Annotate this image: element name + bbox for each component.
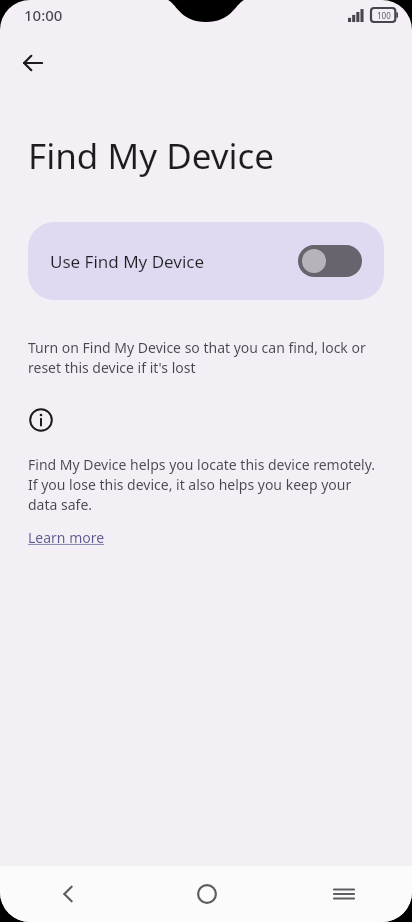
staticText: Find My Device helps you locate this dev…	[28, 455, 384, 514]
button[interactable]: Learn more	[28, 528, 105, 547]
button[interactable]: Use Find My Device	[28, 222, 384, 300]
staticText: 10:00	[24, 5, 63, 25]
staticText: Learn more	[28, 528, 105, 547]
button[interactable]: Home	[138, 866, 275, 922]
staticText: Turn on Find My Device so that you can f…	[28, 338, 384, 377]
staticText: 100	[377, 10, 391, 21]
button[interactable]: Back	[12, 42, 54, 84]
staticText: Use Find My Device	[50, 250, 205, 273]
button[interactable]: Back	[0, 866, 138, 922]
button[interactable]: Recent apps	[275, 866, 412, 922]
staticText: Find My Device	[28, 132, 275, 180]
